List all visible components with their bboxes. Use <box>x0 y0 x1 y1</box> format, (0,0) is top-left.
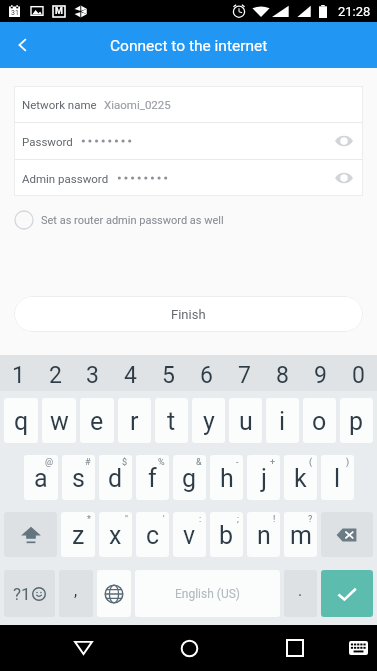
staticText: l <box>334 464 341 493</box>
button[interactable]: Back <box>30 625 136 671</box>
button[interactable]: a <box>24 455 58 500</box>
staticText: 1 <box>12 362 25 389</box>
button[interactable]: Set as router admin password as well <box>14 205 377 235</box>
staticText: j <box>261 464 267 493</box>
staticText: h <box>220 464 234 493</box>
staticText: # <box>85 457 91 468</box>
button[interactable]: j <box>247 455 280 500</box>
button[interactable]: 9 <box>301 355 339 391</box>
button[interactable]: q <box>4 398 38 443</box>
staticText: ) <box>346 457 350 468</box>
staticText: Finish <box>171 307 206 322</box>
staticText: M <box>55 6 63 17</box>
staticText: 5 <box>162 362 175 389</box>
button[interactable]: , <box>59 570 93 617</box>
button[interactable]: b <box>210 512 243 557</box>
button[interactable]: k <box>284 455 317 500</box>
staticText: s <box>72 464 85 493</box>
button[interactable]: Home <box>136 625 242 671</box>
button[interactable]: 6 <box>187 355 225 391</box>
staticText: Admin password <box>22 172 109 185</box>
staticText: . <box>298 581 303 600</box>
button[interactable]: f <box>136 455 169 500</box>
button[interactable]: s <box>62 455 95 500</box>
staticText: " <box>125 514 128 525</box>
button[interactable]: o <box>303 398 336 443</box>
button[interactable]: . <box>284 570 317 617</box>
staticText: : <box>199 514 202 525</box>
button[interactable]: h <box>210 455 243 500</box>
staticText: x <box>109 521 122 550</box>
button[interactable]: m <box>284 512 317 557</box>
staticText: + <box>270 457 276 468</box>
staticText: ! <box>273 514 276 525</box>
button[interactable]: Switch keyboard <box>348 625 368 671</box>
staticText: 2 <box>49 362 62 389</box>
button[interactable]: Recent apps <box>242 625 348 671</box>
staticText: 31 <box>11 9 19 17</box>
button[interactable]: 3 <box>74 355 111 391</box>
staticText: - <box>236 457 239 468</box>
button[interactable]: Admin password <box>22 160 360 196</box>
staticText: 8 <box>276 362 289 389</box>
staticText: o <box>312 407 327 436</box>
button[interactable]: w <box>42 398 76 443</box>
staticText: a <box>34 464 48 493</box>
button[interactable]: Symbols <box>4 570 55 617</box>
button[interactable]: t <box>155 398 188 443</box>
staticText: 6 <box>200 362 213 389</box>
staticText: u <box>239 407 253 436</box>
button[interactable]: 1 <box>0 355 37 391</box>
staticText: k <box>294 464 307 493</box>
button[interactable]: 7 <box>225 355 263 391</box>
staticText: English (US) <box>175 587 240 601</box>
button[interactable]: Show password <box>328 160 360 196</box>
staticText: e <box>90 407 104 436</box>
button[interactable]: Navigate up <box>0 22 46 68</box>
staticText: , <box>74 581 78 600</box>
button[interactable]: English (US) <box>135 570 280 617</box>
staticText: y <box>203 407 215 436</box>
button[interactable]: Enter <box>321 570 373 617</box>
button[interactable]: z <box>61 512 95 557</box>
button[interactable]: u <box>229 398 262 443</box>
button[interactable]: 2 <box>37 355 74 391</box>
button[interactable]: Finish <box>14 296 363 332</box>
staticText: % <box>158 457 165 468</box>
button[interactable]: Shift <box>4 512 57 557</box>
button[interactable]: v <box>173 512 206 557</box>
staticText: Password <box>22 135 73 148</box>
staticText: w <box>50 407 69 436</box>
button[interactable]: 8 <box>263 355 301 391</box>
staticText: Connect to the internet <box>110 37 268 55</box>
button[interactable]: 5 <box>149 355 187 391</box>
staticText: z <box>72 521 85 550</box>
button[interactable]: 0 <box>339 355 377 391</box>
button[interactable]: Change language <box>97 570 131 617</box>
staticText: 7 <box>238 362 251 389</box>
button[interactable]: Backspace <box>321 512 373 557</box>
button[interactable]: r <box>118 398 151 443</box>
staticText: t <box>167 407 176 436</box>
button[interactable]: 4 <box>111 355 149 391</box>
button[interactable]: x <box>99 512 132 557</box>
button[interactable]: p <box>340 398 373 443</box>
button[interactable]: d <box>99 455 132 500</box>
button[interactable]: n <box>247 512 280 557</box>
staticText: c <box>146 521 160 550</box>
staticText: ?1 <box>13 584 31 604</box>
button[interactable]: c <box>136 512 169 557</box>
button[interactable]: l <box>321 455 354 500</box>
staticText: n <box>257 521 271 550</box>
button[interactable]: Show password <box>328 123 360 159</box>
button[interactable]: y <box>192 398 225 443</box>
staticText: p <box>349 407 364 436</box>
staticText: b <box>219 521 234 550</box>
button[interactable]: e <box>80 398 114 443</box>
staticText: 9 <box>314 362 327 389</box>
button[interactable]: g <box>173 455 206 500</box>
button[interactable]: Network name <box>22 86 360 122</box>
button[interactable]: i <box>266 398 299 443</box>
button[interactable]: Password <box>22 123 360 159</box>
staticText: ' <box>163 514 165 525</box>
